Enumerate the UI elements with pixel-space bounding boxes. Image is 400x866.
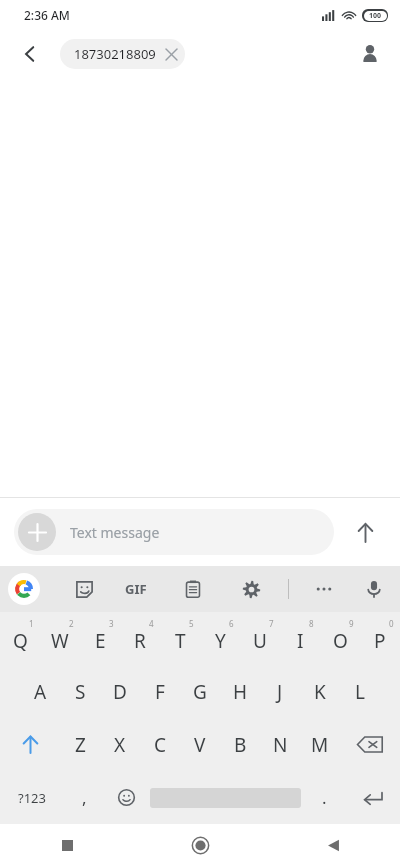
button[interactable]: F [140, 665, 180, 718]
staticText: 7 [269, 618, 274, 629]
staticText: 2 [69, 618, 74, 629]
button[interactable]: 18730218809 [60, 39, 185, 69]
button[interactable]: O [320, 612, 360, 665]
button[interactable]: Add attachment [18, 513, 56, 551]
button[interactable]: A [20, 665, 60, 718]
button[interactable]: Q [0, 612, 40, 665]
button[interactable]: H [220, 665, 260, 718]
button[interactable]: Send [344, 511, 386, 553]
button[interactable]: Settings [233, 571, 269, 607]
staticText: 5 [189, 618, 194, 629]
button[interactable]: G [180, 665, 220, 718]
staticText: Z [75, 732, 86, 758]
button[interactable]: Enter [345, 771, 400, 824]
staticText: C [154, 732, 167, 758]
button[interactable]: Stickers [66, 571, 102, 607]
button[interactable]: Emoji [105, 771, 147, 824]
button[interactable]: U [240, 612, 280, 665]
staticText: X [114, 732, 126, 758]
staticText: 0 [389, 618, 394, 629]
staticText: ?123 [18, 789, 46, 807]
button[interactable]: R [120, 612, 160, 665]
staticText: S [75, 679, 86, 705]
staticText: 2:36 AM [24, 7, 70, 23]
button[interactable]: Recents [0, 824, 134, 866]
staticText: F [155, 679, 165, 705]
staticText: Text message [70, 523, 160, 542]
button[interactable]: Contact details [350, 34, 390, 74]
staticText: A [34, 679, 47, 705]
button[interactable]: Google [8, 573, 40, 605]
staticText: E [95, 628, 106, 654]
staticText: T [175, 628, 186, 654]
button[interactable]: Shift [0, 718, 60, 771]
staticText: Q [13, 628, 28, 654]
button[interactable]: Backspace [340, 718, 400, 771]
button[interactable]: W [40, 612, 80, 665]
staticText: U [253, 628, 267, 654]
staticText: I [297, 628, 304, 654]
staticText: O [333, 628, 348, 654]
button[interactable]: V [180, 718, 220, 771]
button[interactable]: GIF [116, 569, 156, 609]
button[interactable]: Home [134, 824, 267, 866]
staticText: Y [215, 628, 226, 654]
staticText: 6 [229, 618, 234, 629]
staticText: R [134, 628, 146, 654]
button[interactable]: I [280, 612, 320, 665]
button[interactable]: Back [10, 34, 50, 74]
button[interactable]: ?123 [0, 771, 63, 824]
staticText: K [314, 679, 326, 705]
button[interactable]: D [100, 665, 140, 718]
staticText: . [322, 786, 327, 809]
staticText: M [311, 732, 329, 758]
staticText: D [113, 679, 127, 705]
button[interactable]: Back [267, 824, 400, 866]
button[interactable]: Voice input [356, 571, 392, 607]
button[interactable]: C [140, 718, 180, 771]
button[interactable]: , [63, 771, 105, 824]
button[interactable]: . [303, 771, 345, 824]
staticText: G [193, 679, 207, 705]
button[interactable]: Z [60, 718, 100, 771]
button[interactable]: S [60, 665, 100, 718]
staticText: H [233, 679, 248, 705]
staticText: J [277, 679, 283, 705]
button[interactable]: E [80, 612, 120, 665]
button[interactable]: N [260, 718, 300, 771]
button[interactable]: B [220, 718, 260, 771]
button[interactable]: K [300, 665, 340, 718]
button[interactable]: Clipboard [175, 571, 211, 607]
button[interactable]: Y [200, 612, 240, 665]
button[interactable]: More options [306, 571, 342, 607]
staticText: B [234, 732, 247, 758]
staticText: 9 [349, 618, 354, 629]
staticText: 18730218809 [74, 45, 156, 63]
staticText: 8 [309, 618, 314, 629]
staticText: 3 [109, 618, 114, 629]
button[interactable]: L [340, 665, 380, 718]
button[interactable]: J [260, 665, 300, 718]
staticText: W [51, 628, 69, 654]
staticText: 100 [369, 11, 382, 21]
button[interactable]: T [160, 612, 200, 665]
button[interactable]: X [100, 718, 140, 771]
staticText: GIF [125, 580, 147, 598]
button[interactable]: M [300, 718, 340, 771]
button[interactable]: Space [147, 771, 303, 824]
staticText: 4 [149, 618, 154, 629]
staticText: L [355, 679, 365, 705]
button[interactable]: P [360, 612, 400, 665]
staticText: , [82, 786, 87, 809]
button[interactable]: Add attachment [14, 509, 334, 555]
staticText: V [194, 732, 206, 758]
staticText: P [374, 628, 386, 654]
staticText: 1 [29, 618, 34, 629]
staticText: N [273, 732, 288, 758]
